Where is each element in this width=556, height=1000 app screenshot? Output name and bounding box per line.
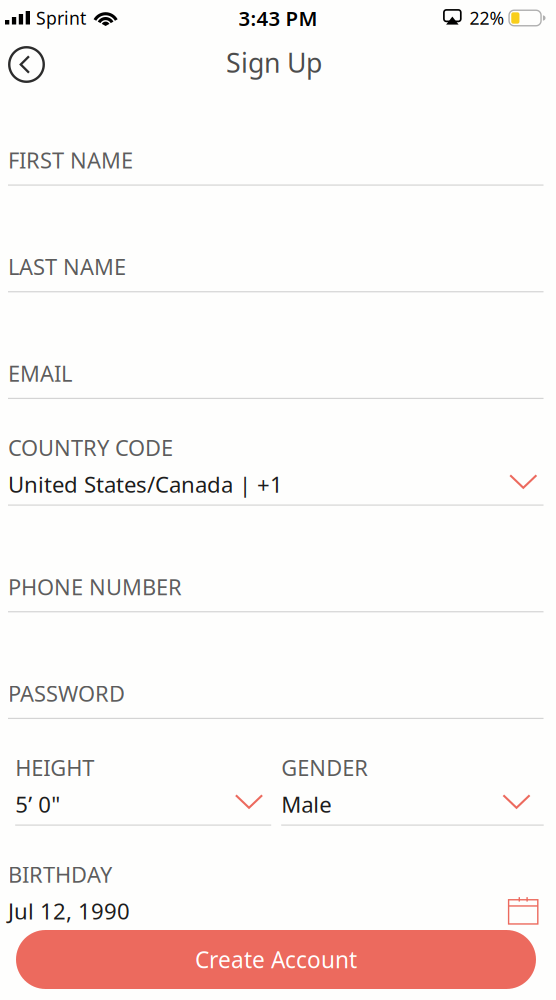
staticText: PHONE NUMBER bbox=[8, 572, 182, 602]
staticText: 5’ 0" bbox=[15, 789, 60, 819]
staticText: Male bbox=[281, 789, 331, 819]
button[interactable]: Back bbox=[4, 35, 48, 79]
staticText: United States/Canada | +1 bbox=[8, 469, 283, 499]
staticText: PASSWORD bbox=[8, 678, 125, 708]
staticText: COUNTRY CODE bbox=[8, 433, 173, 462]
staticText: EMAIL bbox=[8, 358, 72, 388]
staticText: Sign Up bbox=[226, 44, 322, 81]
button[interactable]: Create Account bbox=[16, 930, 536, 989]
staticText: Sprint bbox=[36, 6, 86, 30]
button[interactable]: BIRTHDAY bbox=[8, 826, 543, 932]
button[interactable]: LAST NAME bbox=[8, 186, 543, 292]
button[interactable]: EMAIL bbox=[8, 292, 543, 399]
button[interactable]: HEIGHT bbox=[15, 719, 271, 826]
staticText: HEIGHT bbox=[15, 753, 94, 782]
button[interactable]: GENDER bbox=[281, 719, 544, 826]
staticText: Create Account bbox=[195, 944, 357, 975]
staticText: 22% bbox=[469, 6, 504, 30]
staticText: FIRST NAME bbox=[8, 145, 133, 175]
staticText: 3:43 PM bbox=[238, 4, 317, 32]
button[interactable]: FIRST NAME bbox=[8, 79, 543, 186]
staticText: Jul 12, 1990 bbox=[8, 896, 130, 926]
staticText: LAST NAME bbox=[8, 252, 126, 281]
button[interactable]: PASSWORD bbox=[8, 612, 543, 719]
staticText: BIRTHDAY bbox=[8, 859, 112, 889]
staticText: GENDER bbox=[281, 753, 368, 782]
button[interactable]: PHONE NUMBER bbox=[8, 506, 543, 612]
button[interactable]: COUNTRY CODE bbox=[8, 399, 543, 506]
